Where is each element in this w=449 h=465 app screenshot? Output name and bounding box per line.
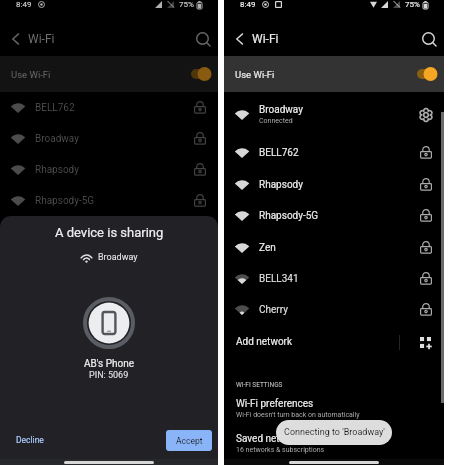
staticText: 8:49 [240,0,256,9]
staticText: Wi-Fi preferences [236,398,314,410]
staticText: Rhapsody-5G [259,210,319,222]
staticText: A device is sharing [55,225,164,240]
staticText: 16 networks & subscriptions [236,446,325,454]
staticText: Wi-Fi doesn't turn back on automatically [236,411,360,419]
button[interactable]: Network settings [419,108,433,122]
button[interactable]: Rhapsody [224,169,444,200]
staticText: Use Wi-Fi [11,69,51,80]
button[interactable]: Rhapsody-5G [0,185,218,216]
button[interactable]: Back [8,31,24,47]
button[interactable]: Use Wi-Fi [0,56,218,92]
button[interactable]: Secured network [419,209,433,223]
button[interactable]: BELL762 [224,137,444,169]
button[interactable]: Decline [10,430,50,450]
staticText: BELL341 [259,273,299,285]
button[interactable]: Add network [224,325,444,359]
button[interactable]: Secured network [193,132,207,146]
staticText: AB's Phone [84,358,135,370]
staticText: PIN: 5069 [89,370,129,381]
button[interactable]: Secured network [419,303,433,317]
staticText: 75% [179,0,194,9]
staticText: Rhapsody-5G [35,195,95,207]
button[interactable]: Rhapsody [0,154,218,185]
staticText: Zen [259,242,276,254]
staticText: Connecting to 'Broadway' [284,427,385,438]
button[interactable]: Saved networks [224,433,444,454]
staticText: Broadway [35,133,79,145]
button[interactable]: Broadway [0,123,218,154]
staticText: Wi-Fi [252,32,279,46]
staticText: Broadway [259,104,303,116]
button[interactable]: BELL762 [0,92,218,123]
staticText: 75% [405,0,420,9]
button[interactable]: Secured network [419,272,433,286]
staticText: Cherry [259,304,288,316]
button[interactable]: Cherry [224,294,444,325]
button[interactable]: BELL341 [224,263,444,294]
button[interactable]: Secured network [419,146,433,160]
staticText: Connected [259,117,293,125]
button[interactable]: Search [421,31,438,48]
button[interactable]: Use Wi-Fi [224,56,444,92]
button[interactable]: Back [232,31,248,47]
staticText: BELL762 [259,147,299,159]
button[interactable]: Connecting to 'Broadway' [276,420,392,445]
staticText: Add network [236,336,293,348]
button[interactable]: Accept [166,430,212,451]
button[interactable]: Broadway [224,92,444,137]
staticText: Accept [176,436,203,446]
button[interactable]: Scan QR code [420,337,431,348]
button[interactable]: Secured network [419,178,433,192]
staticText: Rhapsody [259,179,303,191]
staticText: BELL762 [35,102,75,114]
button[interactable]: Secured network [193,194,207,208]
staticText: Decline [16,435,44,445]
staticText: Wi-Fi [28,32,55,46]
staticText: Saved networks [236,433,307,445]
button[interactable]: Zen [224,232,444,263]
staticText: Broadway [98,252,138,263]
staticText: Use Wi-Fi [235,69,275,80]
button[interactable]: Secured network [193,101,207,115]
button[interactable]: Secured network [419,241,433,255]
button[interactable]: Search [195,31,212,48]
staticText: Rhapsody [35,164,79,176]
button[interactable]: Secured network [193,163,207,177]
button[interactable]: Wi-Fi preferences [224,398,444,419]
staticText: 8:49 [16,0,32,9]
button[interactable]: Rhapsody-5G [224,200,444,232]
staticText: WI-FI SETTINGS [236,381,283,389]
